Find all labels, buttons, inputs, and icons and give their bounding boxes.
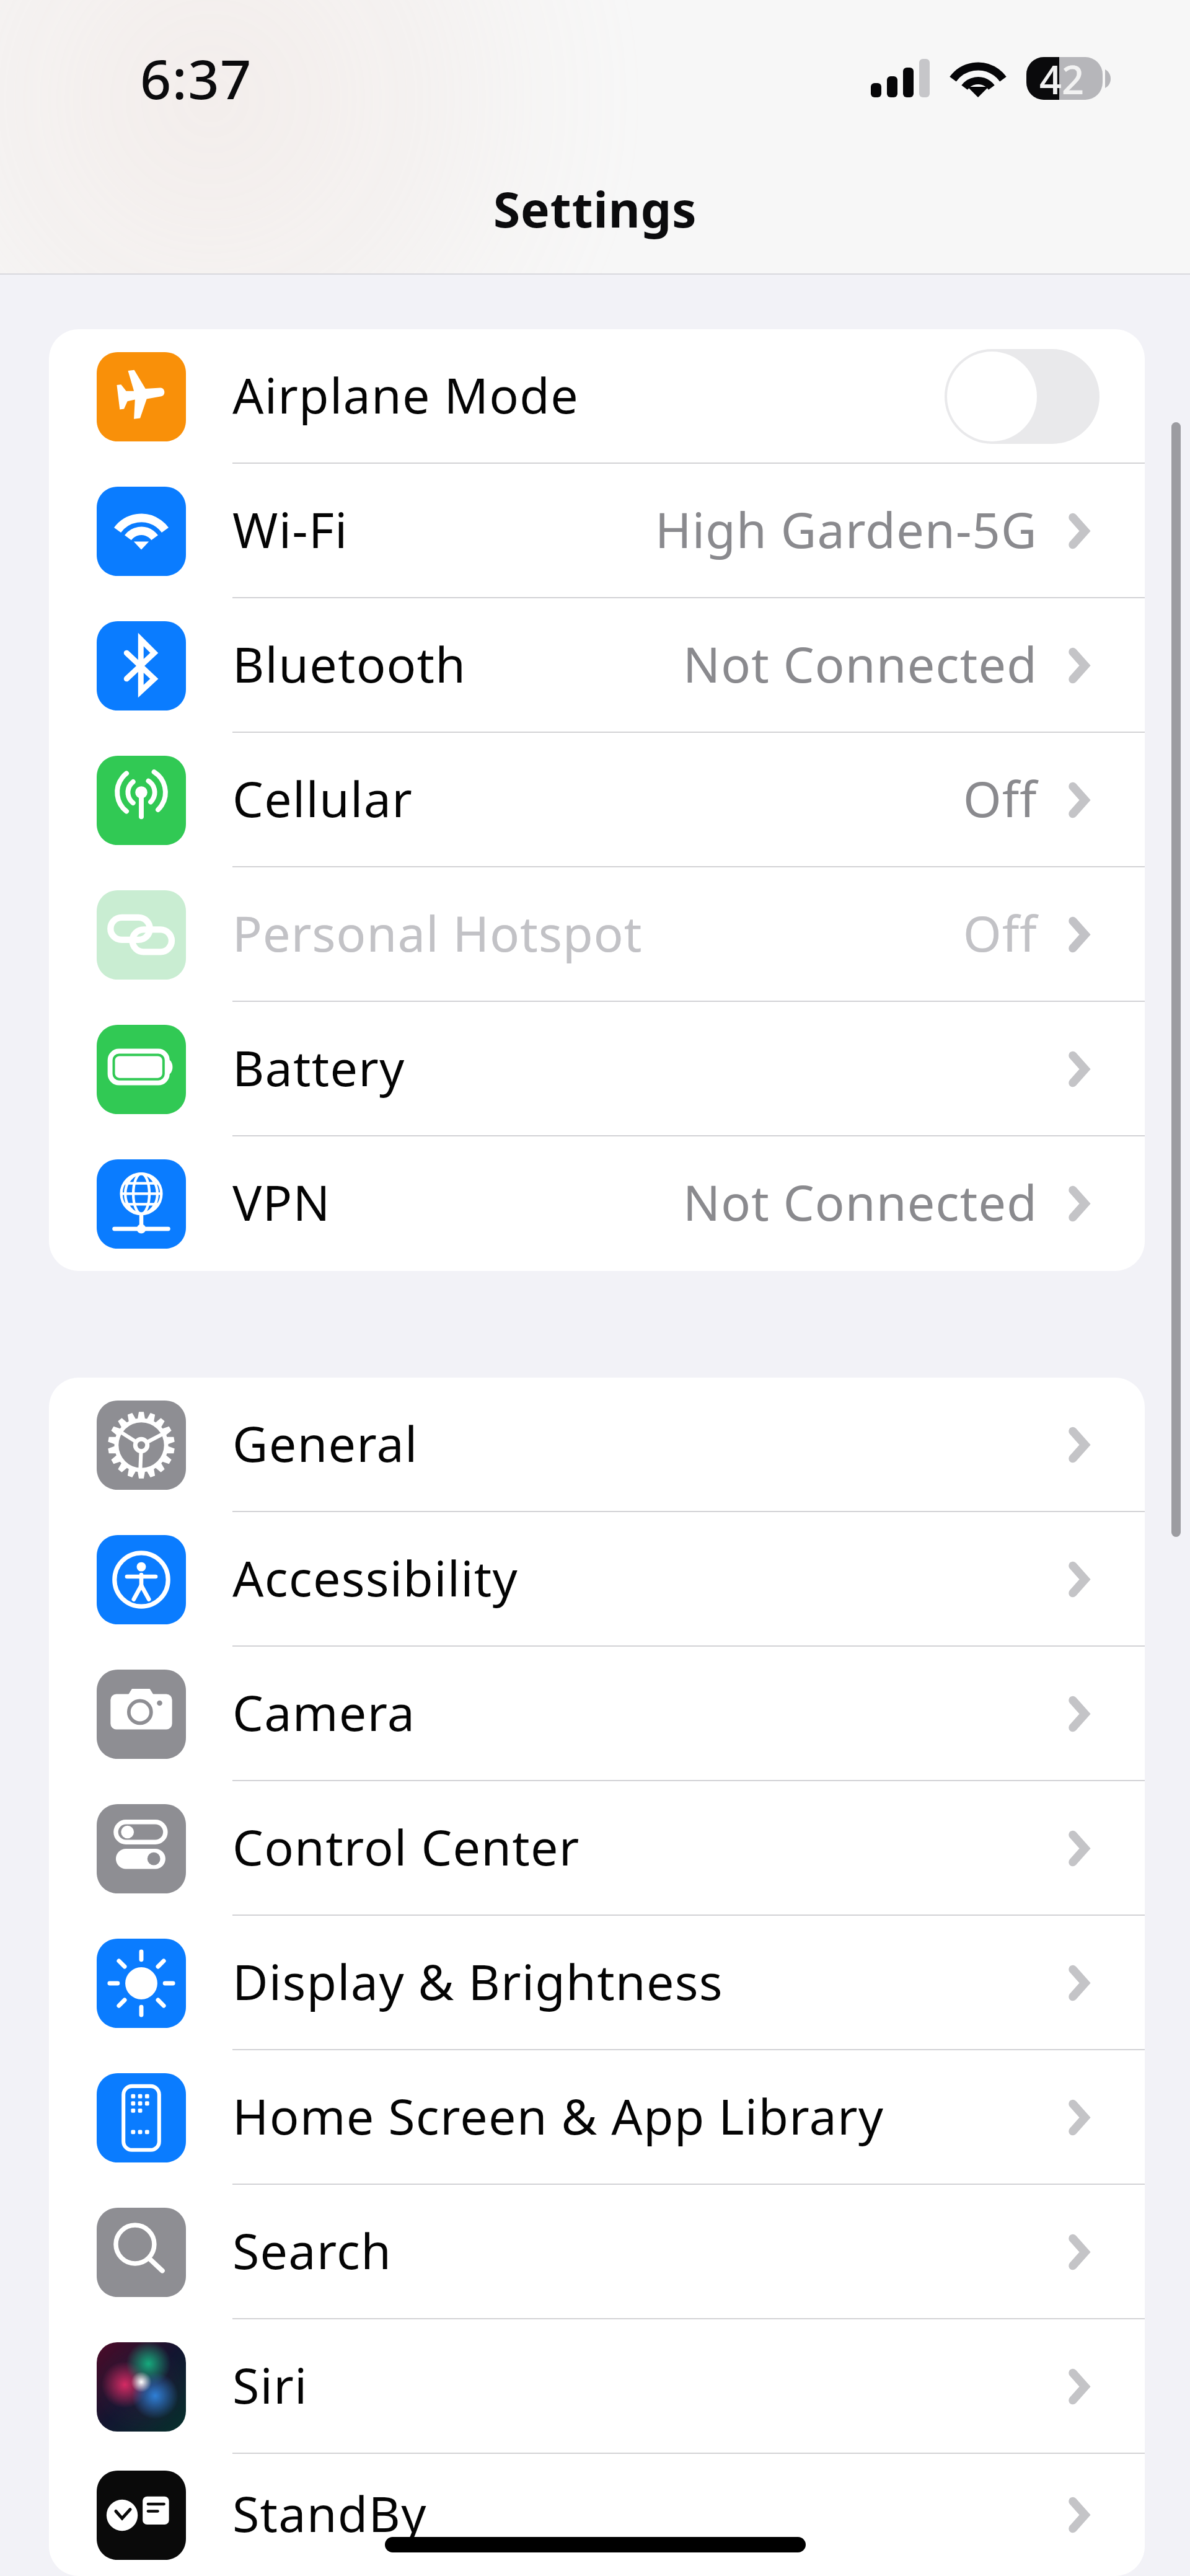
staticText: Off [963,765,1038,832]
button[interactable]: Accessibility [49,1512,1145,1647]
staticText: VPN [232,1169,331,1236]
button[interactable]: Wi-Fi [49,464,1145,598]
staticText: Siri [232,2352,308,2419]
staticText: 42 [1039,53,1085,106]
staticText: Not Connected [683,1169,1038,1236]
staticText: Battery [232,1034,405,1101]
button[interactable]: Personal Hotspot [49,867,1145,1002]
button[interactable]: Airplane Mode [49,329,1145,464]
button[interactable]: VPN [49,1136,1145,1271]
button[interactable]: Camera [49,1647,1145,1781]
staticText: Airplane Mode [232,361,579,428]
staticText: Camera [232,1679,416,1746]
staticText: Accessibility [232,1544,519,1611]
staticText: Not Connected [683,631,1038,697]
staticText: High Garden-5G [655,496,1038,563]
button[interactable]: General [49,1378,1145,1512]
button[interactable]: StandBy [49,2454,1145,2576]
staticText: General [232,1410,418,1477]
staticText: Display & Brightness [232,1948,723,2015]
button[interactable]: Battery [49,1002,1145,1136]
staticText: 6:37 [140,41,252,115]
staticText: Search [232,2217,392,2284]
staticText: Off [963,900,1038,967]
staticText: Settings [0,175,1190,242]
staticText: Control Center [232,1813,580,1880]
staticText: Bluetooth [232,631,467,697]
staticText: Home Screen & App Library [232,2082,884,2149]
button[interactable]: Siri [49,2319,1145,2454]
button[interactable]: Display & Brightness [49,1916,1145,2050]
button[interactable]: Home Screen & App Library [49,2050,1145,2185]
button[interactable]: Airplane Mode toggle [945,349,1100,444]
staticText: Personal Hotspot [232,900,643,967]
staticText: Cellular [232,765,413,832]
button[interactable]: Bluetooth [49,598,1145,733]
button[interactable]: Control Center [49,1781,1145,1916]
staticText: StandBy [232,2480,427,2547]
staticText: Wi-Fi [232,496,348,563]
button[interactable]: Cellular [49,733,1145,867]
button[interactable]: Search [49,2185,1145,2319]
